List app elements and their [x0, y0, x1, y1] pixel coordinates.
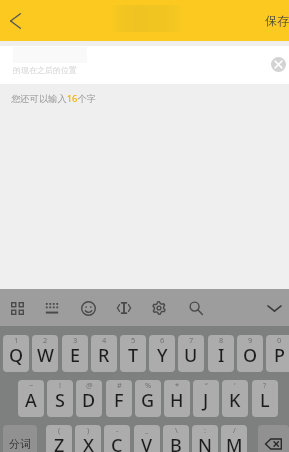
staticText: 2 [43, 335, 48, 345]
staticText: ! [59, 380, 62, 390]
staticText: @ [86, 380, 93, 390]
staticText: A [25, 388, 37, 413]
button[interactable]: - [104, 425, 130, 452]
staticText: N [198, 433, 212, 452]
staticText: C [111, 433, 123, 452]
staticText: * [175, 380, 180, 390]
button[interactable]: Hide keyboard [258, 292, 289, 324]
button[interactable]: 保存 [257, 0, 289, 41]
staticText: % [145, 380, 152, 390]
staticText: “ [205, 380, 208, 390]
button[interactable]: 9 [237, 335, 263, 372]
button[interactable]: 分词 [3, 425, 37, 452]
staticText: R [98, 343, 110, 368]
staticText: 4 [102, 335, 107, 345]
staticText: 3 [73, 335, 78, 345]
button[interactable]: ) [75, 425, 101, 452]
staticText: # [117, 380, 122, 390]
button[interactable]: 2 [32, 335, 58, 372]
button[interactable]: Text cursor [108, 292, 140, 324]
staticText: V [141, 433, 153, 452]
staticText: ~ [29, 380, 34, 390]
staticText: O [243, 343, 258, 368]
button[interactable]: Backspace [258, 425, 289, 452]
staticText: 6 [160, 335, 165, 345]
staticText: S [55, 388, 65, 413]
button[interactable]: 0 [266, 335, 289, 372]
staticText: U [184, 343, 198, 368]
staticText: G [141, 388, 155, 413]
button[interactable]: 4 [91, 335, 117, 372]
staticText: F [114, 388, 124, 413]
staticText: 的现在之后的位置 [13, 65, 77, 75]
staticText: _ [145, 425, 149, 435]
staticText: - [116, 425, 119, 435]
staticText: L [260, 388, 270, 413]
button[interactable]: # [106, 380, 132, 417]
staticText: 分词 [9, 437, 31, 451]
button[interactable]: \ [163, 425, 189, 452]
staticText: E [70, 343, 81, 368]
button[interactable]: Emoji [72, 292, 104, 324]
staticText: H [170, 388, 184, 413]
button[interactable]: 1 [3, 335, 29, 372]
staticText: ? [263, 380, 267, 390]
staticText: Z [54, 433, 65, 452]
button[interactable]: : [192, 425, 218, 452]
button[interactable]: Keyboard [36, 292, 68, 324]
staticText: P [274, 343, 285, 368]
button[interactable]: 7 [178, 335, 204, 372]
staticText: / [233, 425, 236, 435]
staticText: 9 [248, 335, 253, 345]
staticText: T [128, 343, 139, 368]
button[interactable]: _ [134, 425, 160, 452]
staticText: X [83, 433, 94, 452]
staticText: M [226, 433, 243, 452]
staticText: 7 [189, 335, 194, 345]
button[interactable]: Clear text [271, 57, 286, 72]
button[interactable]: Keyboard layouts [1, 292, 33, 324]
staticText: D [82, 388, 96, 413]
staticText: W [37, 343, 54, 368]
button[interactable]: Back [0, 0, 31, 41]
staticText: 保存 [265, 13, 289, 28]
staticText: Y [157, 343, 168, 368]
staticText: ‘ [234, 380, 236, 390]
staticText: ( [58, 425, 61, 435]
staticText: J [203, 388, 209, 413]
button[interactable]: ( [46, 425, 72, 452]
button[interactable]: “ [193, 380, 219, 417]
button[interactable]: 3 [62, 335, 88, 372]
button[interactable]: 5 [120, 335, 146, 372]
staticText: B [170, 433, 182, 452]
staticText: : [204, 425, 207, 435]
button[interactable]: ! [47, 380, 73, 417]
button[interactable]: 8 [208, 335, 234, 372]
staticText: ) [87, 425, 90, 435]
staticText: 0 [277, 335, 282, 345]
button[interactable]: @ [76, 380, 102, 417]
staticText: 5 [131, 335, 136, 345]
staticText: I [218, 343, 225, 368]
button[interactable]: 6 [149, 335, 175, 372]
button[interactable]: / [221, 425, 247, 452]
staticText: 1 [14, 335, 19, 345]
button[interactable]: ? [252, 380, 278, 417]
staticText: 8 [219, 335, 224, 345]
button[interactable]: ~ [18, 380, 44, 417]
staticText: \ [175, 425, 178, 435]
staticText: 您还可以输入16个字 [11, 92, 97, 105]
button[interactable]: % [135, 380, 161, 417]
button[interactable]: Settings [143, 292, 175, 324]
staticText: K [229, 388, 241, 413]
staticText: Q [9, 343, 24, 368]
button[interactable]: * [164, 380, 190, 417]
button[interactable]: ‘ [222, 380, 248, 417]
button[interactable]: Search [180, 292, 212, 324]
